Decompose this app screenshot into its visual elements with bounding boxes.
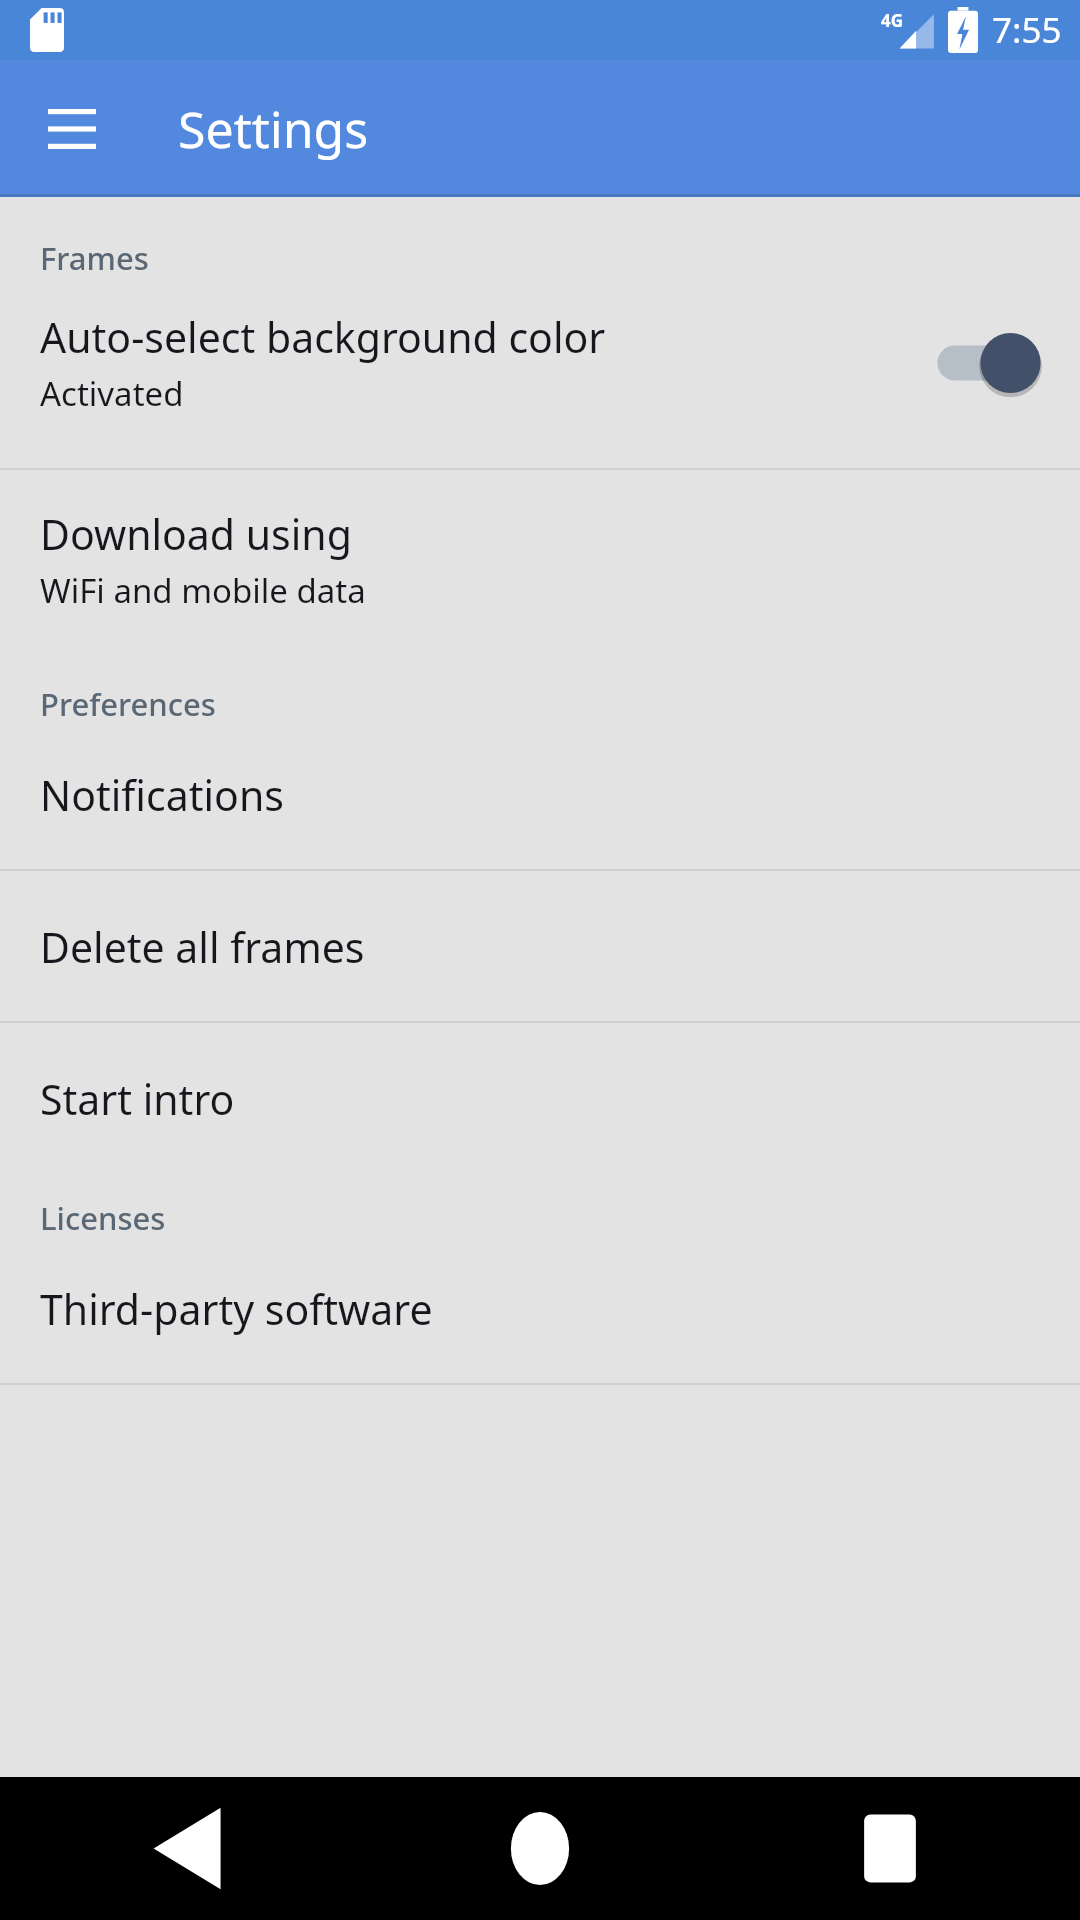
button[interactable]: Open navigation menu bbox=[24, 81, 120, 177]
button[interactable]: Home bbox=[470, 1777, 610, 1920]
button[interactable]: Third-party software bbox=[0, 1281, 1080, 1337]
staticText: Start intro bbox=[40, 1071, 235, 1127]
button[interactable]: Auto-select background color bbox=[0, 309, 1080, 416]
button[interactable]: Recent apps bbox=[820, 1777, 960, 1920]
button[interactable]: Back bbox=[120, 1777, 260, 1920]
staticText: Licenses bbox=[40, 1197, 166, 1239]
staticText: Notifications bbox=[40, 767, 284, 823]
button[interactable]: Notifications bbox=[0, 767, 1080, 823]
staticText: Settings bbox=[178, 95, 369, 163]
staticText: 7:55 bbox=[992, 6, 1062, 54]
staticText: WiFi and mobile data bbox=[40, 568, 366, 613]
button[interactable]: Download using bbox=[0, 506, 1080, 613]
button[interactable]: Auto-select background color toggle, on bbox=[932, 328, 1040, 398]
staticText: 4G bbox=[881, 9, 904, 32]
staticText: Preferences bbox=[40, 683, 216, 725]
staticText: Third-party software bbox=[40, 1281, 433, 1337]
staticText: Frames bbox=[40, 237, 149, 279]
staticText: Delete all frames bbox=[40, 919, 365, 975]
staticText: Download using bbox=[40, 506, 352, 562]
staticText: Activated bbox=[40, 371, 184, 416]
button[interactable]: Start intro bbox=[0, 1071, 1080, 1127]
button[interactable]: Delete all frames bbox=[0, 919, 1080, 975]
staticText: Auto-select background color bbox=[40, 309, 606, 365]
